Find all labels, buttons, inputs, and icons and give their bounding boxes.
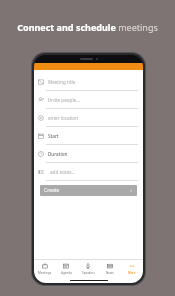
button[interactable]: Agenda [55,260,77,277]
staticText: News [106,271,114,275]
button[interactable]: Create [40,185,137,196]
staticText: Connect and schedule meetings [17,21,158,33]
button[interactable]: News [99,260,121,277]
staticText: Duration [48,151,68,157]
button[interactable]: enter location [34,109,143,126]
staticText: Start [48,133,59,139]
button[interactable]: Invite people... [34,91,143,108]
staticText: Meetings [38,271,52,275]
button[interactable]: Start [34,127,143,144]
staticText: Speakers [82,271,95,275]
button[interactable]: Meeting title [34,73,143,90]
staticText: Agenda [61,271,72,275]
button[interactable]: add notes... [34,163,143,180]
staticText: More [128,271,136,275]
staticText: Create [44,187,60,194]
staticText: enter location [48,115,78,121]
staticText: add notes... [50,169,76,175]
button[interactable]: Duration [34,145,143,162]
button[interactable]: More [121,260,143,277]
button[interactable]: Speakers [77,260,99,277]
staticText: Invite people... [48,97,80,103]
staticText: Meeting title [48,79,76,85]
button[interactable]: Meetings [34,260,55,277]
